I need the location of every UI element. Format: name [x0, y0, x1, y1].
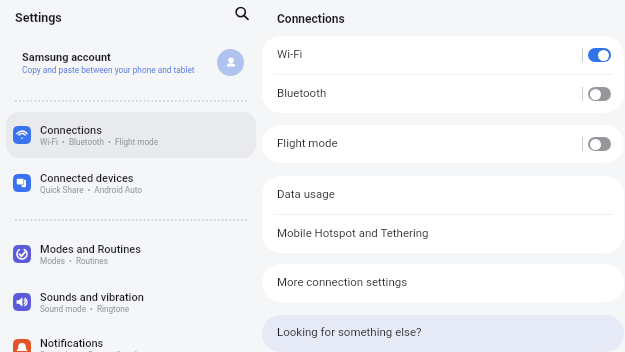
staticText: Connections — [277, 12, 345, 26]
staticText: Bluetooth — [277, 86, 581, 99]
button[interactable]: More connection settings — [262, 264, 624, 302]
button[interactable]: Wi-Fi — [262, 36, 624, 74]
staticText: Modes and Routines — [40, 243, 141, 256]
staticText: More connection settings — [277, 275, 408, 288]
button[interactable]: Samsung account — [6, 37, 256, 89]
button[interactable]: Flight mode — [262, 125, 624, 163]
staticText: Settings — [15, 10, 62, 25]
button[interactable]: Notifications — [6, 325, 256, 352]
staticText: Mobile Hotspot and Tethering — [277, 226, 429, 239]
staticText: Samsung account — [22, 51, 111, 64]
staticText: Data usage — [277, 187, 335, 200]
button[interactable]: Mobile Hotspot and Tethering — [262, 215, 624, 253]
staticText: Wi-Fi — [277, 47, 581, 60]
staticText: Flight mode — [277, 136, 581, 149]
button[interactable]: Flight mode toggle — [588, 137, 611, 151]
staticText: Modes • Routines — [40, 256, 108, 266]
staticText: Sounds and vibration — [40, 291, 144, 304]
staticText: Connections — [40, 124, 102, 137]
staticText: Looking for something else? — [277, 325, 422, 338]
staticText: Notifications — [40, 337, 104, 350]
button[interactable]: Wi-Fi toggle — [588, 48, 611, 62]
button[interactable]: Looking for something else? — [262, 315, 624, 352]
staticText: Copy and paste between your phone and ta… — [22, 65, 195, 75]
button[interactable]: Connected devices — [6, 160, 256, 206]
button[interactable]: Bluetooth toggle — [588, 87, 611, 101]
staticText: Connected devices — [40, 172, 134, 185]
button[interactable]: Data usage — [262, 176, 624, 214]
button[interactable]: Connections — [6, 112, 256, 158]
staticText: Quick Share • Android Auto — [40, 185, 142, 195]
staticText: Status bar • Do not disturb — [40, 350, 140, 352]
staticText: Wi-Fi • Bluetooth • Flight mode — [40, 137, 159, 147]
staticText: Sound mode • Ringtone — [40, 304, 130, 314]
button[interactable]: Search — [227, 0, 255, 28]
button[interactable]: Sounds and vibration — [6, 279, 256, 325]
button[interactable]: Modes and Routines — [6, 231, 256, 277]
button[interactable]: Bluetooth — [262, 75, 624, 113]
